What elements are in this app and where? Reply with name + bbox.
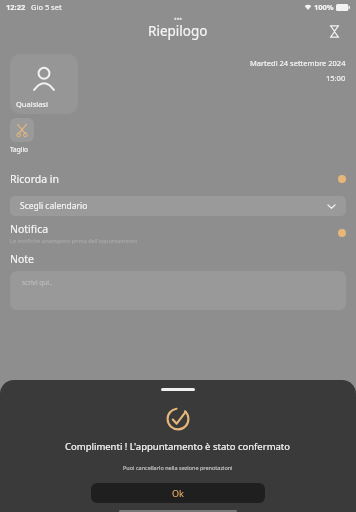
button[interactable]: Qualsiasi [10,54,78,114]
staticText: Le notifiche avvengono prima dell'appunt… [10,237,138,244]
staticText: scrivi qui.. [22,278,53,287]
button[interactable]: Scegli calendario [10,196,346,216]
staticText: Scegli calendario [20,200,88,212]
staticText: Note [10,252,35,266]
staticText: ••• [174,15,182,25]
staticText: Notifica [10,222,49,236]
staticText: Puoi cancellarlo nella sezione prenotazi… [123,464,233,471]
staticText: 12:22 [6,2,26,12]
button[interactable]: Ok [91,483,265,503]
button[interactable]: Notifica [10,222,346,244]
staticText: Martedì 24 settembre 2024 [250,58,346,68]
staticText: Qualsiasi [16,99,48,109]
button[interactable] [324,173,346,185]
staticText: Gio 5 set [31,2,62,12]
staticText: Riepilogo [148,22,208,40]
button[interactable]: Ricorda in [10,168,346,190]
staticText: 15:00 [326,73,346,83]
staticText: 100% [314,2,334,12]
button[interactable] [10,118,34,142]
staticText: Complimenti ! L'appuntamento è stato con… [65,440,291,453]
button[interactable] [324,227,346,239]
button[interactable]: Cronologia [320,17,348,45]
staticText: Taglio [10,145,29,154]
staticText: Ricorda in [10,172,60,186]
staticText: Ok [172,487,184,499]
